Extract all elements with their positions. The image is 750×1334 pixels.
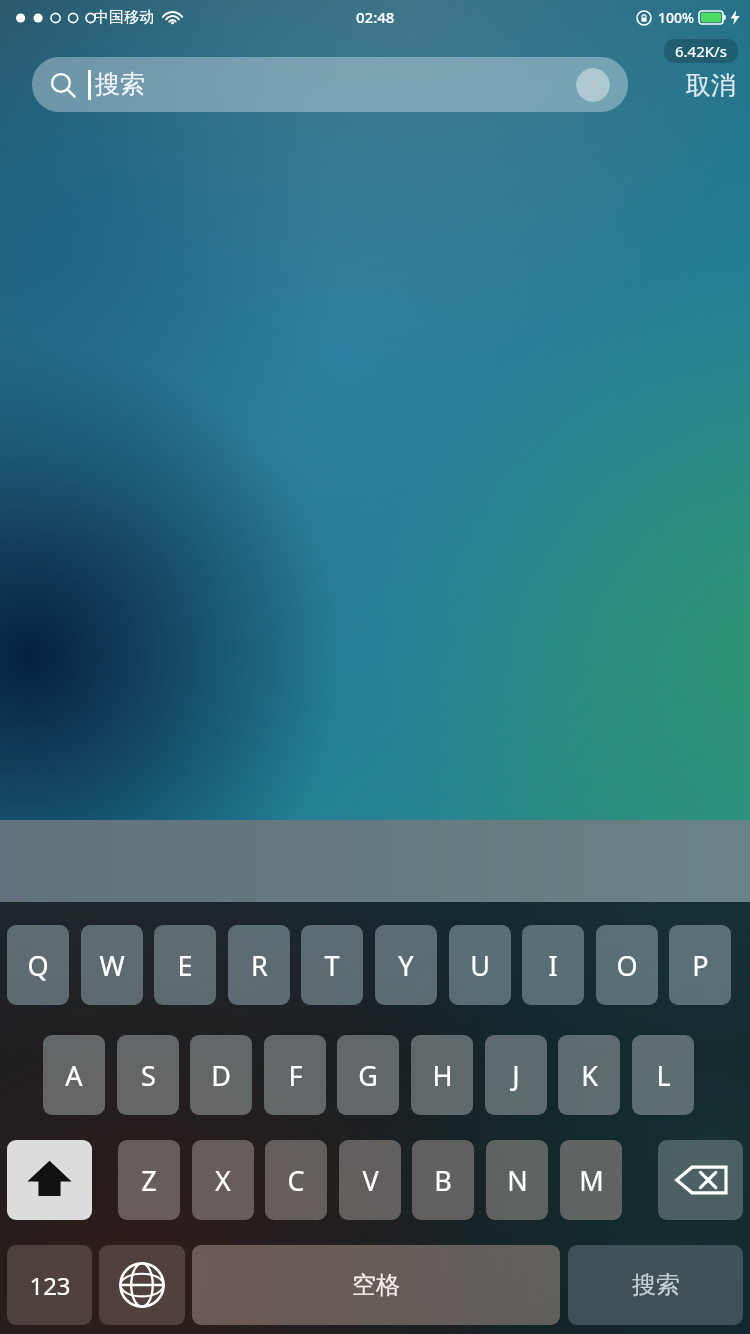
staticText: X <box>215 1162 231 1199</box>
button[interactable]: S <box>117 1035 179 1115</box>
button[interactable]: Q <box>7 925 69 1005</box>
button[interactable]: P <box>669 925 731 1005</box>
button[interactable]: Y <box>375 925 437 1005</box>
staticText: Z <box>141 1162 157 1199</box>
button[interactable]: 空格 <box>192 1245 560 1325</box>
button[interactable]: M <box>560 1140 622 1220</box>
staticText: B <box>434 1162 452 1199</box>
staticText: 123 <box>29 1269 71 1302</box>
staticText: Q <box>27 947 49 984</box>
button[interactable]: 123 <box>7 1245 92 1325</box>
button[interactable]: 搜索 <box>568 1245 743 1325</box>
button[interactable]: G <box>337 1035 399 1115</box>
staticText: 6.42K/s <box>675 41 727 61</box>
staticText: T <box>324 947 340 984</box>
button[interactable]: F <box>264 1035 326 1115</box>
button[interactable]: O <box>596 925 658 1005</box>
staticText: D <box>211 1057 231 1094</box>
staticText: V <box>362 1162 379 1199</box>
button[interactable]: Clear text <box>576 68 610 102</box>
button[interactable]: V <box>339 1140 401 1220</box>
staticText: 空格 <box>352 1270 400 1300</box>
staticText: 取消 <box>686 70 736 101</box>
button[interactable]: H <box>411 1035 473 1115</box>
button[interactable]: U <box>449 925 511 1005</box>
staticText: S <box>141 1057 156 1094</box>
staticText: C <box>287 1162 305 1199</box>
button[interactable]: E <box>154 925 216 1005</box>
staticText: O <box>616 947 638 984</box>
button[interactable]: Shift <box>7 1140 92 1220</box>
staticText: N <box>507 1162 528 1199</box>
button[interactable]: 取消 <box>686 70 736 101</box>
button[interactable]: N <box>486 1140 548 1220</box>
button[interactable]: 搜索 <box>32 57 628 112</box>
button[interactable]: Z <box>118 1140 180 1220</box>
button[interactable]: T <box>301 925 363 1005</box>
staticText: 搜索 <box>95 69 145 100</box>
button[interactable]: C <box>265 1140 327 1220</box>
staticText: U <box>470 947 490 984</box>
staticText: F <box>288 1057 303 1094</box>
staticText: A <box>65 1057 83 1094</box>
button[interactable]: K <box>558 1035 620 1115</box>
staticText: 中国移动 <box>94 8 154 27</box>
staticText: M <box>579 1162 604 1199</box>
button[interactable]: L <box>632 1035 694 1115</box>
staticText: P <box>692 947 709 984</box>
staticText: R <box>251 947 268 984</box>
button[interactable]: W <box>81 925 143 1005</box>
button[interactable]: Change keyboard <box>99 1245 185 1325</box>
button[interactable]: I <box>522 925 584 1005</box>
staticText: H <box>432 1057 453 1094</box>
staticText: J <box>512 1057 520 1094</box>
button[interactable]: A <box>43 1035 105 1115</box>
staticText: I <box>548 947 558 984</box>
button[interactable]: D <box>190 1035 252 1115</box>
button[interactable]: X <box>192 1140 254 1220</box>
button[interactable]: R <box>228 925 290 1005</box>
staticText: Y <box>398 947 414 984</box>
staticText: 搜索 <box>632 1270 680 1300</box>
staticText: 100% <box>658 8 694 27</box>
button[interactable]: B <box>412 1140 474 1220</box>
staticText: 02:48 <box>356 7 395 27</box>
staticText: L <box>656 1057 671 1094</box>
staticText: G <box>358 1057 378 1094</box>
staticText: E <box>177 947 193 984</box>
button[interactable]: Backspace <box>658 1140 743 1220</box>
button[interactable]: J <box>485 1035 547 1115</box>
staticText: W <box>99 947 125 984</box>
staticText: K <box>581 1057 598 1094</box>
